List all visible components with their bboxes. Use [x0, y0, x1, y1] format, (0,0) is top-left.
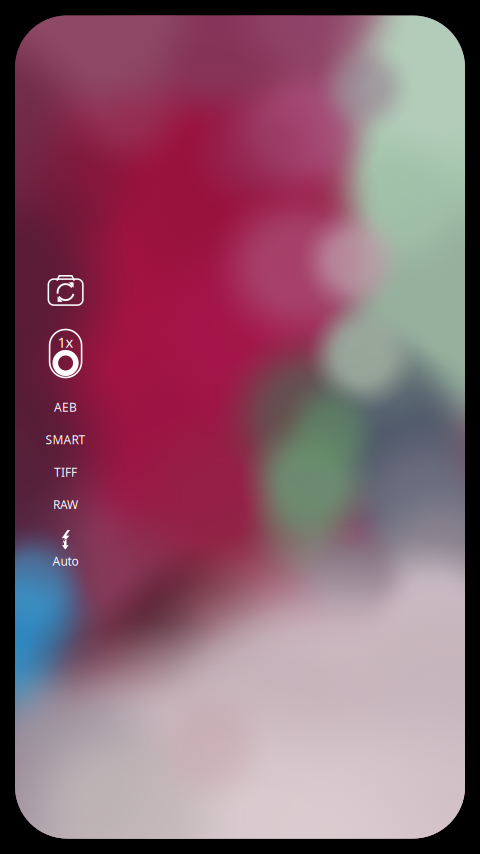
button[interactable]: AEB	[34, 392, 98, 422]
staticText: AEB	[54, 399, 77, 415]
staticText: 1x	[58, 332, 74, 352]
button[interactable]: TIFF	[34, 457, 98, 487]
staticText: Auto	[53, 553, 79, 569]
button[interactable]: Switch camera	[37, 267, 95, 311]
button[interactable]: Zoom 1x	[40, 324, 92, 382]
button[interactable]: RAW	[34, 489, 98, 519]
button[interactable]: SMART	[34, 424, 98, 454]
staticText: TIFF	[54, 464, 77, 480]
button[interactable]: Flash auto	[34, 529, 98, 569]
staticText: SMART	[46, 431, 86, 447]
staticText: RAW	[53, 496, 78, 512]
